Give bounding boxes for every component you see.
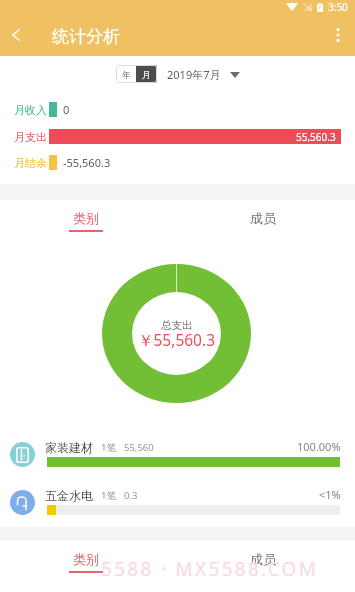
staticText: 类别 <box>73 551 99 567</box>
button[interactable]: Back <box>3 22 29 48</box>
staticText: <1% <box>319 487 341 502</box>
staticText: 成员 <box>250 551 276 567</box>
button[interactable]: 家装建材 <box>0 439 355 483</box>
staticText: ￥55,560.3 <box>138 329 216 350</box>
staticText: 类别 <box>73 210 99 226</box>
button[interactable]: More options <box>321 18 355 52</box>
button[interactable]: 月 <box>136 65 157 83</box>
staticText: 月结余 <box>14 156 47 170</box>
staticText: 1笔 <box>101 489 116 502</box>
button[interactable]: 类别 <box>0 551 174 575</box>
staticText: 总支出 <box>161 319 193 332</box>
button[interactable]: 五金水电 <box>0 487 355 531</box>
button[interactable]: 成员 <box>174 551 352 575</box>
staticText: 五金水电 <box>45 488 93 503</box>
staticText: 0.3 <box>124 489 138 502</box>
staticText: 统计分析 <box>52 26 120 47</box>
button[interactable]: 2019年7月 <box>167 67 240 82</box>
staticText: 月收入 <box>14 103 47 117</box>
staticText: 月支出 <box>14 130 47 144</box>
button[interactable]: 成员 <box>174 210 352 234</box>
staticText: 0 <box>63 102 70 117</box>
staticText: 55,560 <box>124 441 154 454</box>
staticText: 月 <box>142 69 151 80</box>
staticText: 100.00% <box>297 439 341 454</box>
button[interactable]: 年 <box>116 65 136 83</box>
staticText: -55,560.3 <box>63 155 111 170</box>
button[interactable]: 类别 <box>0 210 174 234</box>
staticText: 家装建材 <box>45 440 93 455</box>
staticText: 1笔 <box>101 441 116 454</box>
staticText: 成员 <box>250 210 276 226</box>
staticText: 5588 · MX5588.COM <box>101 556 319 582</box>
staticText: 年 <box>122 69 131 80</box>
staticText: 3:50 <box>328 0 348 14</box>
staticText: 55,560.3 <box>296 130 336 144</box>
staticText: 2019年7月 <box>167 67 221 82</box>
